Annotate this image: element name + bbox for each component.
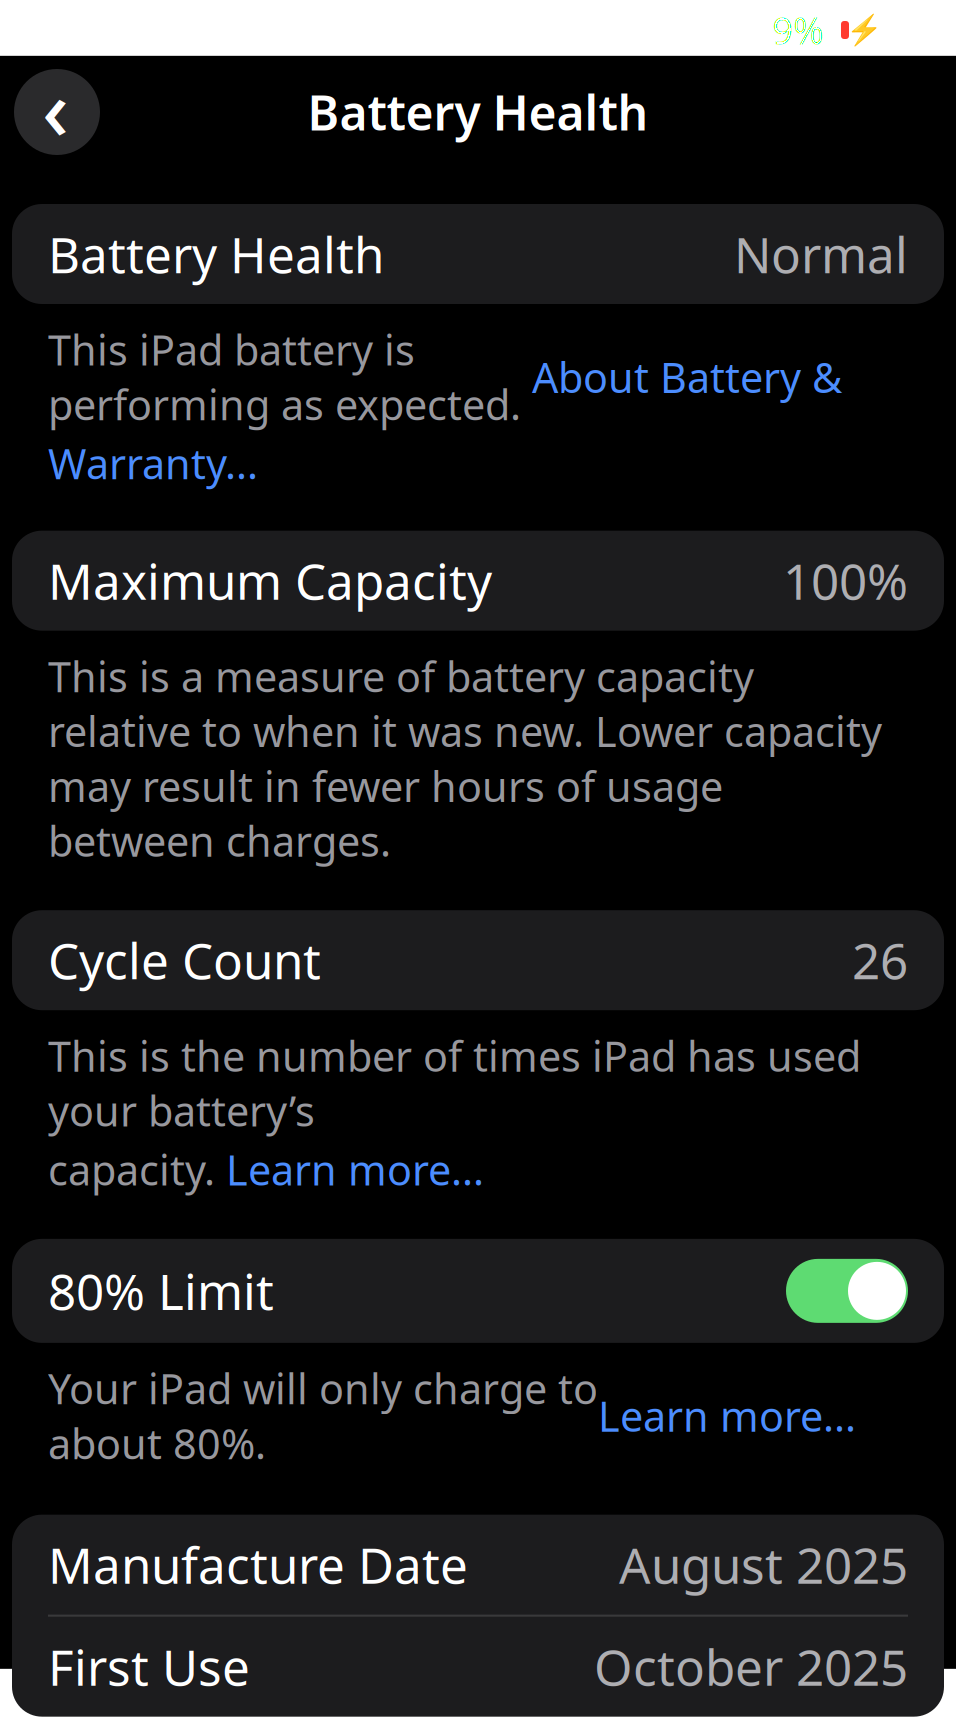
staticText: Learn more... [226, 1142, 484, 1197]
staticText: 9% [772, 5, 824, 55]
button[interactable]: Back [14, 69, 100, 155]
staticText: First Use [48, 1634, 250, 1699]
staticText: October 2025 [594, 1634, 908, 1699]
button[interactable]: Learn more... [226, 1142, 484, 1197]
staticText: Battery Health [307, 80, 648, 144]
staticText: Cycle Count [48, 927, 321, 993]
staticText: About Battery & [532, 349, 842, 404]
button[interactable]: Warranty... [48, 436, 258, 491]
staticText: Learn more... [598, 1388, 856, 1443]
button[interactable]: Learn more... [598, 1388, 856, 1443]
staticText: This is a measure of battery capacity re… [48, 649, 882, 868]
staticText: Battery Health [48, 221, 384, 287]
staticText: capacity. [48, 1142, 226, 1197]
staticText: August 2025 [619, 1532, 908, 1597]
staticText: ⚡ [845, 13, 882, 47]
staticText: Normal [734, 221, 908, 287]
staticText: This iPad battery is performing as expec… [48, 322, 532, 432]
staticText: This is the number of times iPad has use… [48, 1028, 861, 1138]
staticText: Your iPad will only charge to about 80%. [48, 1361, 598, 1471]
staticText: Manufacture Date [48, 1532, 468, 1597]
staticText: Maximum Capacity [48, 548, 492, 613]
staticText: 80% Limit [48, 1258, 274, 1324]
staticText: ‹ [42, 53, 69, 163]
button[interactable]: 80% Limit [12, 1239, 944, 1343]
staticText: 100% [783, 548, 908, 613]
button[interactable]: About Battery & [532, 349, 842, 404]
staticText: Warranty... [48, 436, 258, 491]
staticText: 26 [852, 927, 908, 993]
